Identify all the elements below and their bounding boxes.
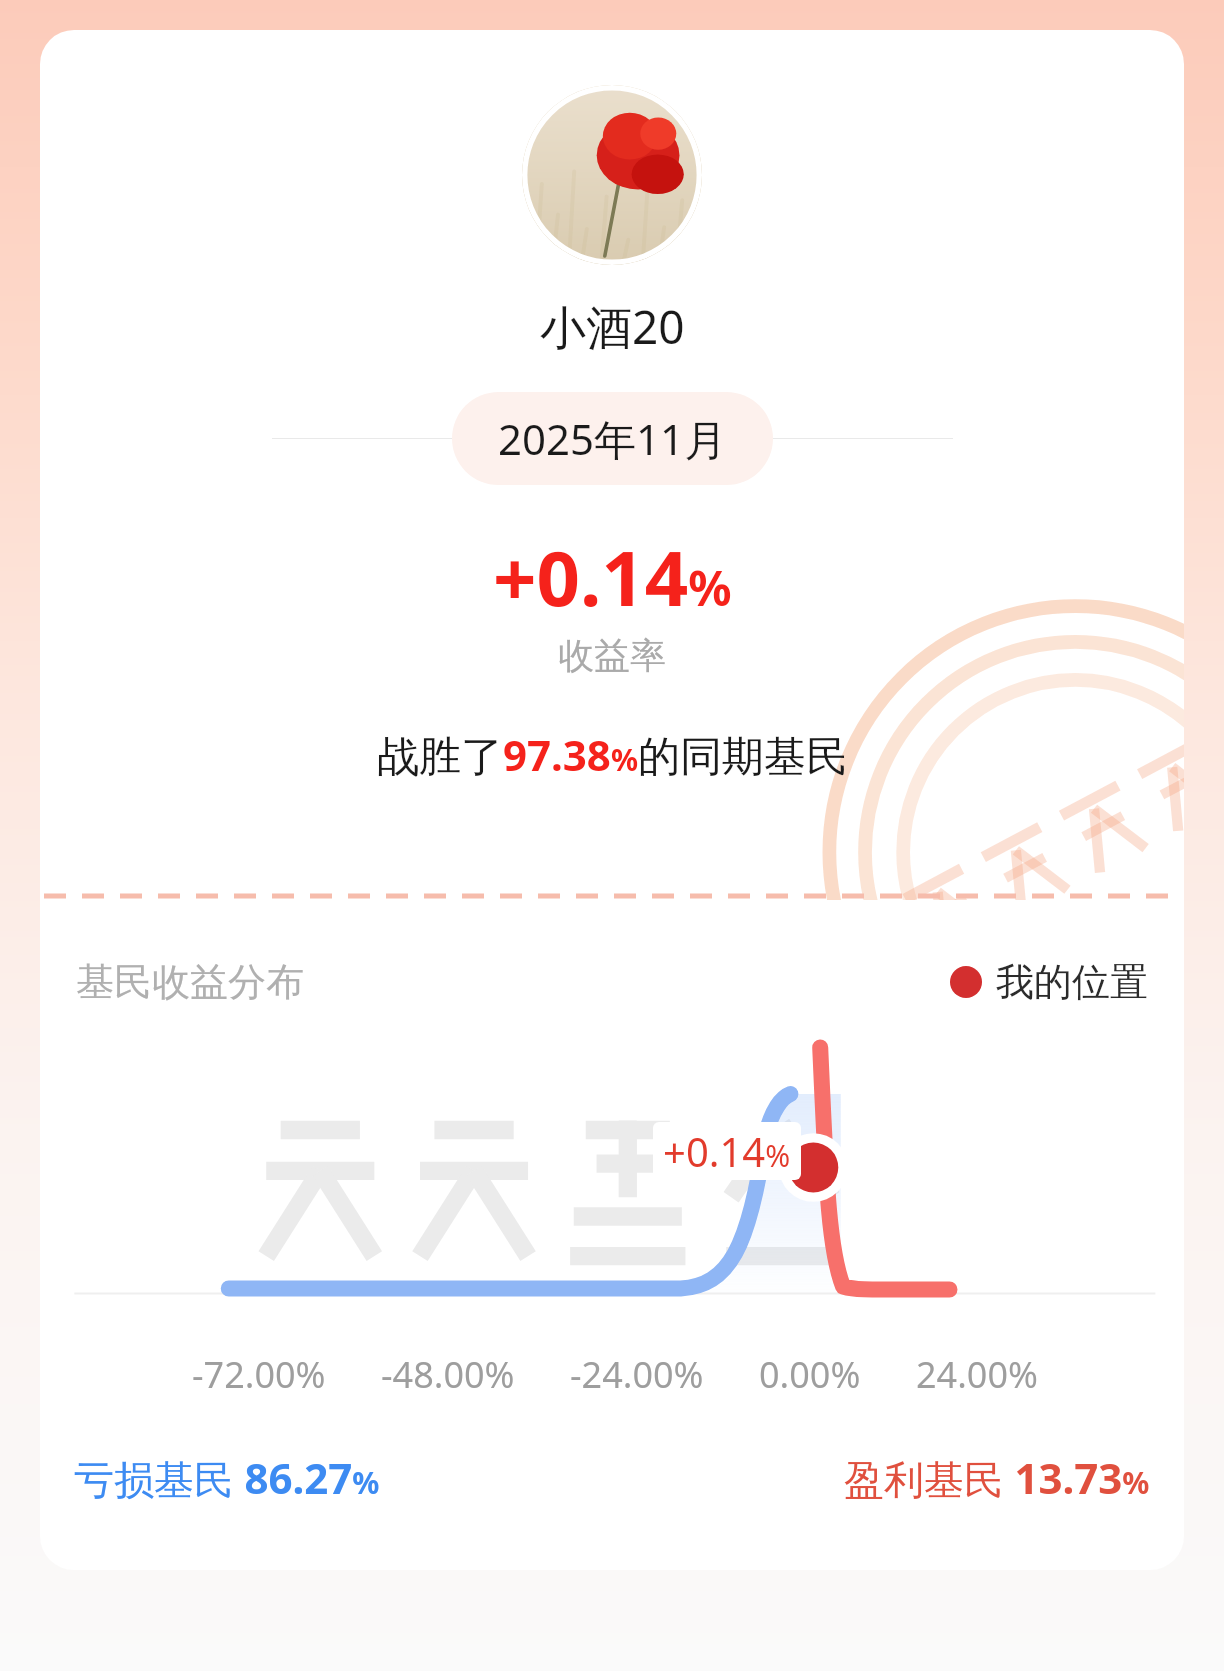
staticText: 24.00%: [916, 1350, 1038, 1399]
staticText: 基民收益分布: [76, 958, 304, 1006]
staticText: +0.14%: [493, 525, 732, 629]
staticText: -72.00%: [192, 1350, 326, 1399]
button[interactable]: 我的位置: [950, 958, 1148, 1006]
staticText: 2025年11月: [498, 410, 727, 467]
staticText: -48.00%: [381, 1350, 515, 1399]
staticText: +0.14%: [663, 1124, 791, 1178]
staticText: 小酒20: [540, 295, 685, 358]
staticText: 盈利基民 13.73%: [844, 1449, 1150, 1506]
button[interactable]: Profile avatar: [522, 85, 702, 265]
staticText: 收益率: [558, 633, 666, 678]
staticText: 战胜了97.38%的同期基民: [377, 726, 848, 783]
staticText: 亏损基民 86.27%: [74, 1449, 380, 1506]
staticText: 我的位置: [996, 958, 1148, 1006]
staticText: 0.00%: [759, 1350, 861, 1399]
staticText: -24.00%: [570, 1350, 704, 1399]
button[interactable]: 2025年11月: [452, 392, 773, 485]
